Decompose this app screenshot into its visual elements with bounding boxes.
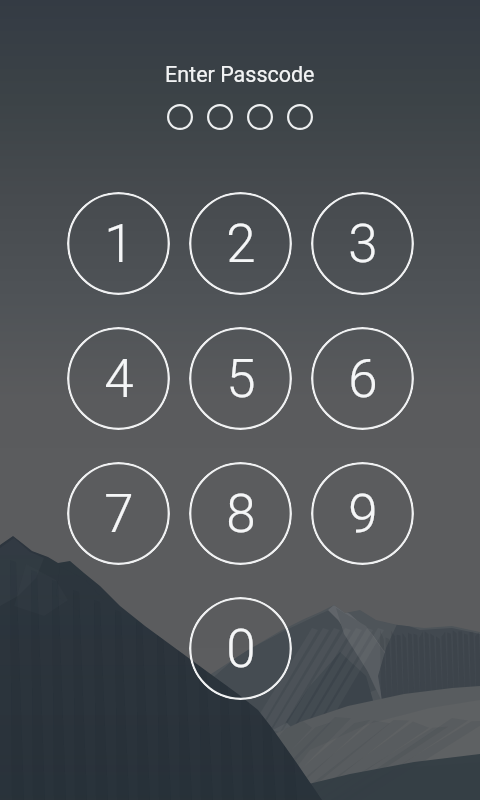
button[interactable]: 9 (311, 462, 414, 565)
button[interactable]: 3 (311, 192, 414, 295)
staticText: 9 (348, 483, 378, 545)
staticText: 6 (348, 348, 378, 410)
staticText: 1 (104, 213, 134, 275)
staticText: 7 (104, 483, 134, 545)
staticText: 8 (226, 483, 256, 545)
button[interactable]: 5 (189, 327, 292, 430)
staticText: 0 (226, 618, 256, 680)
button[interactable]: 8 (189, 462, 292, 565)
button[interactable]: 2 (189, 192, 292, 295)
button[interactable]: 4 (67, 327, 170, 430)
staticText: Enter Passcode (165, 62, 315, 87)
staticText: 4 (104, 348, 134, 410)
staticText: 2 (226, 213, 256, 275)
button[interactable]: 6 (311, 327, 414, 430)
button[interactable]: 0 (189, 597, 292, 700)
staticText: 3 (348, 213, 378, 275)
button[interactable]: 1 (67, 192, 170, 295)
staticText: 5 (226, 348, 256, 410)
button[interactable]: 7 (67, 462, 170, 565)
